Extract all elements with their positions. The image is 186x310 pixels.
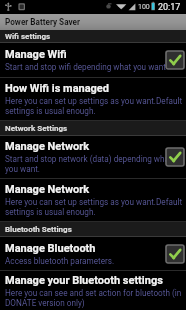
staticText: Manage Network [5,183,90,196]
staticText: Manage Wifi [5,48,67,61]
staticText: Wifi settings [5,32,51,41]
button[interactable]: Manage Bluetooth [0,237,186,270]
staticText: Start and stop network (data) depending … [5,154,183,174]
staticText: 100 [138,3,150,11]
button[interactable]: Toggle setting [164,243,186,265]
staticText: 20:17 [158,2,181,13]
button[interactable]: Toggle setting [164,49,186,71]
staticText: How Wifi is managed [5,82,110,95]
button[interactable]: Manage your Bluetooth settings [0,271,186,310]
button[interactable]: Manage Network [0,179,186,221]
staticText: Here you can set up settings as you want… [5,96,183,116]
button[interactable]: Toggle setting [164,146,186,168]
staticText: Network Settings [5,124,68,133]
staticText: Start and stop wifi depending what you w… [5,62,166,72]
button[interactable]: Power Battery Saver [0,14,186,30]
staticText: Power Battery Saver [5,17,80,27]
staticText: Manage Bluetooth [5,242,96,255]
button[interactable]: Manage Wifi [0,43,186,77]
staticText: Access bluetooth parameters. [5,256,115,266]
staticText: Bluetooth Settings [5,225,72,234]
staticText: Here you can see and set action for blue… [5,288,183,308]
staticText: Here you can set up settings as you want… [5,197,183,217]
button[interactable]: How Wifi is managed [0,78,186,120]
staticText: Manage your Bluetooth settings [5,274,163,287]
staticText: Manage Network [5,140,90,153]
button[interactable]: Manage Network [0,136,186,178]
